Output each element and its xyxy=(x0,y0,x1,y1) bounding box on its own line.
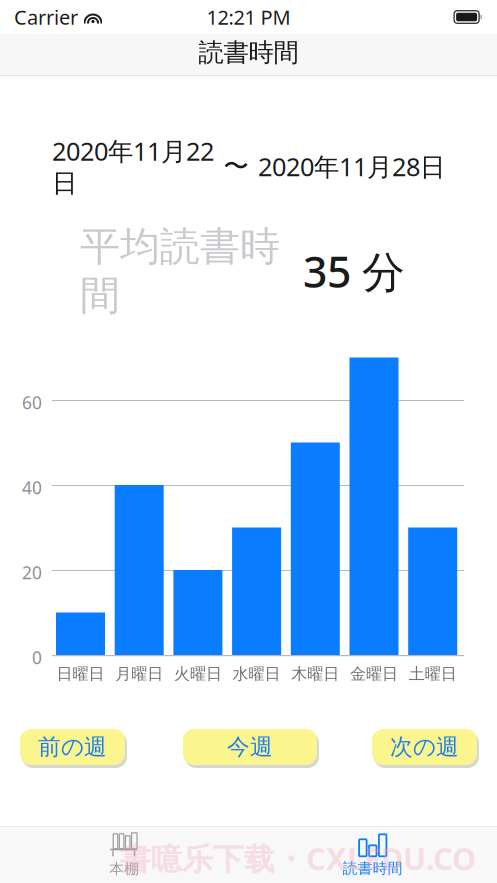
staticText: 土曜日 xyxy=(409,664,457,684)
button[interactable]: 本棚 xyxy=(0,828,248,881)
staticText: 2020年11月22日 xyxy=(52,134,214,199)
staticText: 水曜日 xyxy=(233,664,281,684)
staticText: 平均読書時間 xyxy=(80,222,280,320)
staticText: 20 xyxy=(22,561,42,584)
staticText: Carrier xyxy=(14,4,78,30)
staticText: 0 xyxy=(32,646,42,669)
staticText: 60 xyxy=(22,391,42,414)
staticText: 月曜日 xyxy=(115,664,163,684)
staticText: 12:21 PM xyxy=(206,4,290,30)
staticText: 書噫乐下载・CXLEDU.CO xyxy=(120,838,476,879)
staticText: 2020年11月28日 xyxy=(258,150,445,183)
button[interactable]: 次の週 xyxy=(372,729,477,765)
button[interactable]: 読書時間 xyxy=(248,828,497,881)
staticText: 本棚 xyxy=(109,860,139,878)
staticText: 読書時間 xyxy=(198,37,298,68)
button[interactable]: 今週 xyxy=(183,729,317,765)
staticText: 読書時間 xyxy=(343,859,403,877)
staticText: 35 分 xyxy=(303,243,405,299)
staticText: 前の週 xyxy=(38,733,107,761)
staticText: 今週 xyxy=(227,733,273,761)
staticText: 40 xyxy=(22,476,42,499)
staticText: 木曜日 xyxy=(291,664,339,684)
staticText: 日曜日 xyxy=(56,664,104,684)
staticText: 〜 xyxy=(223,151,248,182)
staticText: 金曜日 xyxy=(350,664,398,684)
staticText: 次の週 xyxy=(390,733,459,761)
staticText: 火曜日 xyxy=(174,664,222,684)
button[interactable]: 前の週 xyxy=(20,729,125,765)
